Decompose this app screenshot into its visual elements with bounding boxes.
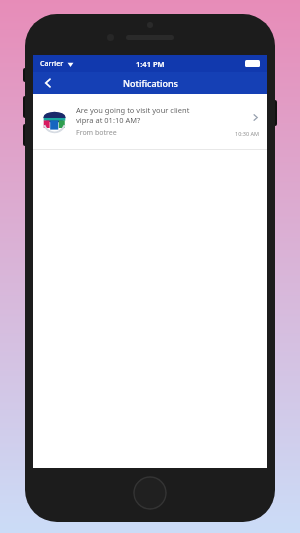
staticText: Are you going to visit your client	[76, 105, 190, 115]
button[interactable]: Are you going to visit your client	[33, 94, 267, 149]
staticText: From botree	[76, 128, 117, 138]
staticText: 10:30 AM	[235, 130, 259, 137]
button[interactable]: Back	[33, 72, 63, 94]
staticText: Carrier	[40, 59, 64, 69]
staticText: vipra at 01:10 AM?	[76, 115, 141, 125]
staticText: Notifications	[123, 77, 178, 89]
staticText: 1:41 PM	[136, 59, 165, 69]
